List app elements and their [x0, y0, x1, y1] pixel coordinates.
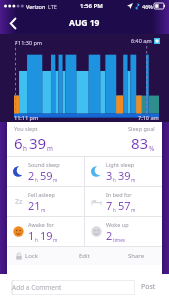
button[interactable]: Awake for — [7, 217, 84, 246]
staticText: m — [53, 237, 58, 243]
staticText: In bed for — [106, 191, 132, 198]
button[interactable]: Edit — [58, 247, 110, 265]
staticText: Lock — [25, 252, 38, 260]
staticText: 2 — [28, 168, 35, 183]
staticText: Zz — [15, 197, 23, 207]
button[interactable]: Woke up — [85, 217, 162, 246]
button[interactable]: Add a Comment — [7, 280, 135, 295]
staticText: Edit — [79, 252, 90, 260]
staticText: 7:10 am — [138, 114, 159, 121]
staticText: 59 — [40, 168, 53, 183]
staticText: Add a Comment — [12, 283, 62, 292]
button[interactable]: Back — [0, 12, 26, 34]
button[interactable]: In bed for — [85, 187, 162, 216]
staticText: h — [113, 207, 116, 213]
staticText: 83 — [131, 133, 149, 153]
staticText: LTE — [48, 3, 57, 10]
staticText: 6 — [14, 133, 23, 153]
staticText: 1 — [28, 228, 35, 243]
staticText: 7 — [106, 198, 113, 213]
staticText: Sound sleep — [28, 161, 60, 168]
staticText: Share — [128, 252, 145, 260]
staticText: h — [113, 177, 116, 183]
staticText: h — [23, 144, 27, 153]
staticText: m — [41, 207, 46, 213]
button[interactable]: Sound sleep — [7, 157, 84, 186]
staticText: 1:56 PM — [80, 2, 103, 10]
staticText: times — [113, 237, 125, 243]
button[interactable]: Post — [135, 279, 162, 295]
staticText: 57 — [118, 198, 131, 213]
staticText: 19 — [40, 228, 53, 243]
staticText: m — [53, 177, 58, 183]
staticText: h — [35, 177, 38, 183]
button[interactable]: Light sleep — [85, 157, 162, 186]
staticText: 2 — [106, 228, 113, 243]
staticText: Woke up — [106, 221, 129, 228]
staticText: 11:11 pm — [14, 114, 39, 121]
staticText: 3 — [106, 168, 113, 183]
staticText: Verizon — [26, 3, 46, 10]
staticText: 21 — [28, 198, 41, 213]
staticText: % — [149, 144, 155, 153]
button[interactable]: Zz — [7, 187, 84, 216]
staticText: 46% — [142, 3, 153, 10]
staticText: 39 — [29, 133, 47, 153]
button[interactable]: Share — [110, 247, 162, 265]
staticText: z — [15, 39, 18, 46]
staticText: 39 — [118, 168, 131, 183]
staticText: 11:30 pm — [18, 39, 43, 46]
staticText: Sleep goal — [128, 125, 155, 132]
staticText: Light sleep — [106, 161, 135, 168]
staticText: Awake for — [28, 221, 54, 228]
staticText: h — [35, 237, 38, 243]
button[interactable]: You slept — [7, 122, 162, 156]
button[interactable]: Lock — [7, 247, 58, 265]
staticText: Fell asleep — [28, 191, 55, 198]
staticText: m — [47, 144, 53, 153]
staticText: AUG 19 — [69, 17, 100, 29]
staticText: You slept — [14, 125, 38, 132]
staticText: m — [131, 177, 136, 183]
staticText: 6:40 am — [131, 37, 152, 44]
staticText: Post — [141, 282, 156, 292]
staticText: m — [131, 207, 136, 213]
